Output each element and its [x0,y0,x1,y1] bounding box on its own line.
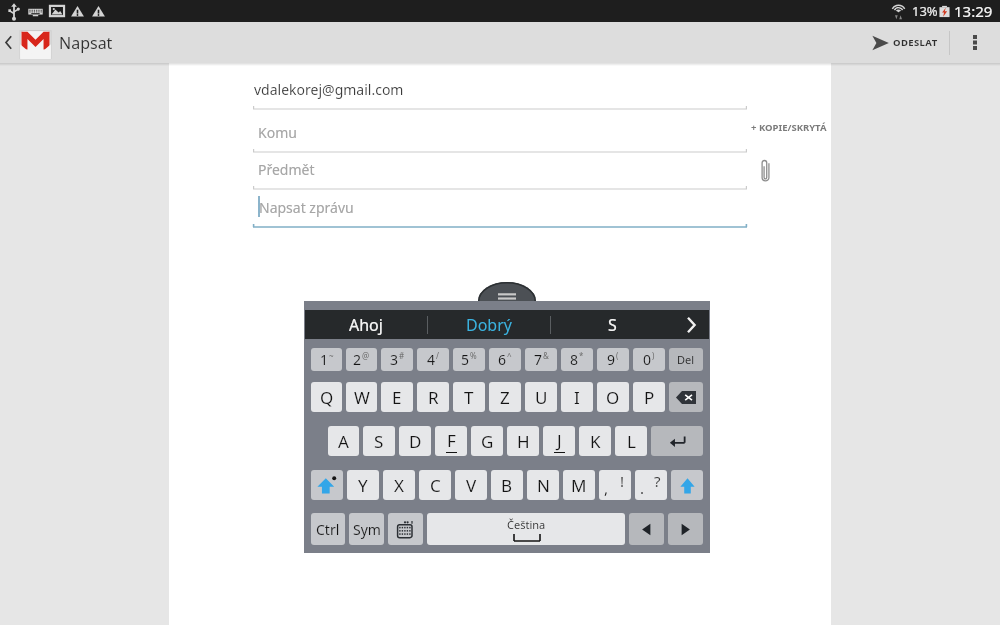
staticText: N [537,474,550,497]
staticText: Napsat zprávu [259,198,354,217]
staticText: B [501,474,513,497]
button[interactable]: T [453,382,485,412]
staticText: Předmět [258,160,315,179]
button[interactable]: U [525,382,557,412]
button[interactable]: J [543,426,575,456]
button[interactable]: Del [669,348,703,371]
button[interactable]: Back [0,22,57,63]
button[interactable]: Dobrý [428,310,550,339]
button[interactable]: Y [347,470,379,500]
button[interactable]: 8 [561,348,593,371]
staticText: Z [500,386,510,409]
staticText: O [606,386,620,409]
staticText: I [574,386,580,409]
staticText: W [354,386,370,409]
button[interactable]: 0 [633,348,665,371]
button[interactable]: More options [950,22,1000,63]
staticText: 5 [461,350,470,369]
staticText: Ahoj [349,314,383,336]
staticText: A [338,430,349,453]
button[interactable]: SHIFT_DOT [311,470,343,500]
staticText: H [517,430,530,453]
button[interactable]: E [381,382,413,412]
button[interactable]: Attach file [755,157,777,185]
button[interactable]: More suggestions [673,310,709,339]
button[interactable]: 3 [381,348,413,371]
staticText: S [608,314,617,336]
button[interactable]: N [527,470,559,500]
button[interactable]: A [328,426,359,456]
button[interactable]: . [635,470,667,500]
button[interactable]: D [399,426,431,456]
staticText: J [557,429,562,452]
button[interactable]: 6 [489,348,521,371]
button[interactable]: 2 [346,348,377,371]
staticText: vdalekorej@gmail.com [254,80,404,99]
button[interactable]: I [561,382,593,412]
button[interactable]: M [563,470,595,500]
button[interactable]: 4 [417,348,449,371]
button[interactable]: From field [253,72,747,109]
staticText: 0 [643,350,652,369]
staticText: Dobrý [466,314,512,336]
staticText: 2 [353,350,362,369]
button[interactable]: H [507,426,539,456]
button[interactable]: P [633,382,665,412]
button[interactable]: SHIFT [671,470,703,500]
button[interactable]: Q [311,382,342,412]
button[interactable]: KEYBOARD [388,513,423,545]
button[interactable]: G [471,426,503,456]
staticText: @ [362,350,370,361]
button[interactable]: 1 [311,348,342,371]
button[interactable]: Čeština [427,513,625,545]
button[interactable]: X [383,470,415,500]
staticText: 1 [320,350,329,369]
button[interactable]: + KOPIE/SKRYTÁ [751,121,827,134]
button[interactable]: Ctrl [311,513,345,545]
staticText: E [392,386,402,409]
staticText: D [409,430,422,453]
button[interactable]: 7 [525,348,557,371]
staticText: T [464,386,474,409]
staticText: 6 [498,350,507,369]
button[interactable]: Sym [349,513,384,545]
button[interactable]: RIGHT [668,513,703,545]
staticText: K [590,430,601,453]
button[interactable]: V [455,470,487,500]
button[interactable]: , [599,470,631,500]
staticText: Y [358,474,368,497]
button[interactable]: R [417,382,449,412]
staticText: P [644,386,655,409]
staticText: ODESLAT [893,36,938,49]
button[interactable]: F [435,426,467,456]
button[interactable]: K [579,426,611,456]
button[interactable]: B [491,470,523,500]
button[interactable]: C [419,470,451,500]
staticText: F [447,429,456,452]
staticText: Del [677,352,695,367]
button[interactable]: S [551,310,673,339]
staticText: % [470,350,477,361]
button[interactable]: L [615,426,647,456]
button[interactable]: 9 [597,348,629,371]
button[interactable]: ENTER [651,426,703,456]
staticText: U [535,386,548,409]
button[interactable]: O [597,382,629,412]
button[interactable]: S [363,426,395,456]
button[interactable]: Hide keyboard [478,282,536,301]
staticText: Ctrl [316,520,340,539]
button[interactable]: ODESLAT [845,22,949,63]
staticText: X [394,474,404,497]
button[interactable]: Message body [253,190,747,225]
button[interactable]: 5 [453,348,485,371]
button[interactable]: BACKSPACE [669,382,703,412]
button[interactable]: Subject field [253,153,747,187]
button[interactable]: Ahoj [305,310,427,339]
button[interactable]: LEFT [629,513,664,545]
button[interactable]: Z [489,382,521,412]
staticText: 13% [912,2,938,20]
button[interactable]: To field [253,115,747,151]
button[interactable]: W [346,382,377,412]
staticText: Q [320,386,334,409]
staticText: G [481,430,494,453]
